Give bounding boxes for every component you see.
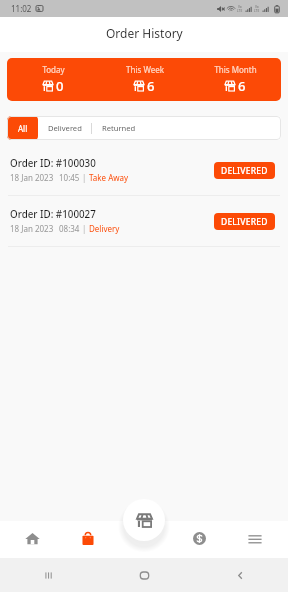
staticText: 08:34 [59, 223, 80, 234]
button[interactable]: This Month [190, 64, 281, 95]
staticText: Order History [106, 25, 183, 41]
staticText: LTE [237, 9, 243, 13]
staticText: Order ID: #100030 [10, 157, 96, 170]
button[interactable]: Store [123, 499, 165, 541]
staticText: All [18, 123, 28, 134]
staticText: This Week [126, 64, 164, 75]
staticText: Delivery [89, 223, 120, 234]
staticText: Returned [102, 123, 136, 133]
button[interactable]: Order ID: #100027 [0, 196, 288, 247]
staticText: 11:02 [11, 3, 32, 14]
staticText: LTE [254, 9, 260, 13]
button[interactable]: Menu [227, 521, 283, 558]
staticText: DELIVERED [221, 165, 268, 177]
button[interactable]: Today [7, 64, 99, 95]
staticText: DELIVERED [221, 216, 268, 228]
button[interactable]: Payments [171, 521, 227, 558]
staticText: This Month [214, 64, 257, 75]
button[interactable]: All [7, 116, 38, 140]
staticText: 0 [56, 77, 64, 95]
button[interactable]: Delivered [38, 116, 91, 140]
staticText: Delivered [48, 123, 82, 133]
staticText: 10:45 [59, 172, 80, 183]
button[interactable]: DELIVERED [214, 213, 275, 230]
staticText: 18 Jan 2023 [10, 223, 54, 234]
staticText: | [80, 223, 89, 234]
staticText: Take Away [89, 172, 129, 183]
staticText: 6 [147, 77, 155, 95]
staticText: 18 Jan 2023 [10, 172, 54, 183]
staticText: | [80, 172, 89, 183]
button[interactable]: Orders [60, 521, 115, 558]
button[interactable]: Returned [92, 116, 147, 140]
staticText: Order ID: #100027 [10, 208, 96, 221]
staticText: Vo [255, 5, 259, 9]
button[interactable]: Home [5, 521, 60, 558]
button[interactable]: DELIVERED [214, 162, 275, 179]
button[interactable]: This Week [99, 64, 190, 95]
staticText: Vo [238, 5, 242, 9]
staticText: 6 [238, 77, 246, 95]
button[interactable]: Order ID: #100030 [0, 145, 288, 196]
staticText: Today [42, 64, 65, 75]
